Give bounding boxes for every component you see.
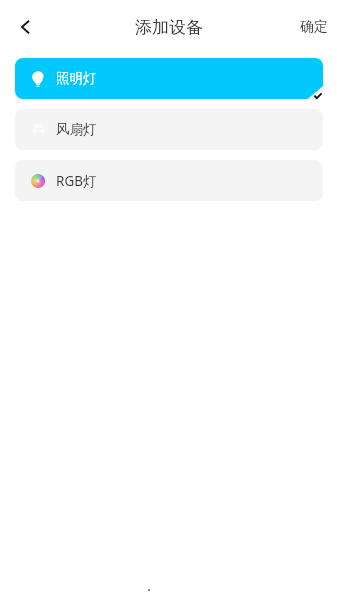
staticText: RGB灯	[56, 172, 97, 190]
staticText: 添加设备	[135, 17, 203, 38]
staticText: 确定	[300, 18, 328, 36]
button[interactable]: 照明灯	[15, 58, 323, 99]
button[interactable]: Back	[10, 12, 40, 42]
button[interactable]: 确定	[296, 12, 332, 42]
button[interactable]: RGB灯	[15, 160, 323, 201]
staticText: 风扇灯	[56, 121, 97, 138]
button[interactable]: 风扇灯	[15, 109, 323, 150]
staticText: 照明灯	[56, 70, 97, 87]
